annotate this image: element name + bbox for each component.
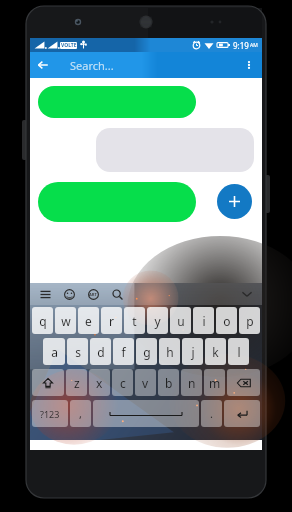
button[interactable]: a: [43, 338, 65, 365]
button[interactable]: Search: [108, 285, 126, 303]
button[interactable]: GIF: [84, 285, 102, 303]
staticText: g: [143, 344, 151, 360]
staticText: ?123: [40, 408, 60, 420]
button[interactable]: j: [182, 338, 203, 365]
staticText: h: [166, 344, 174, 360]
staticText: v: [142, 375, 149, 391]
staticText: k: [212, 344, 219, 360]
staticText: s: [75, 344, 81, 360]
button[interactable]: b: [158, 369, 179, 396]
staticText: y: [154, 313, 161, 329]
button[interactable]: z: [66, 369, 87, 396]
button[interactable]: u: [170, 307, 191, 334]
button[interactable]: h: [159, 338, 180, 365]
button[interactable]: More options: [236, 52, 262, 78]
staticText: u: [177, 313, 185, 329]
button[interactable]: t: [124, 307, 145, 334]
staticText: ,: [79, 406, 82, 421]
button[interactable]: ,: [70, 400, 91, 427]
button[interactable]: Hide keyboard: [238, 285, 256, 303]
button[interactable]: Enter: [224, 400, 260, 427]
button[interactable]: [38, 182, 196, 222]
button[interactable]: d: [90, 338, 111, 365]
staticText: .: [210, 406, 213, 421]
button[interactable]: n: [181, 369, 202, 396]
button[interactable]: x: [89, 369, 110, 396]
staticText: n: [188, 375, 196, 391]
button[interactable]: Add: [217, 184, 252, 219]
button[interactable]: .: [201, 400, 222, 427]
button[interactable]: ?123: [32, 400, 68, 427]
staticText: c: [120, 375, 126, 391]
staticText: 9:19: [233, 40, 249, 51]
button[interactable]: f: [113, 338, 134, 365]
button[interactable]: g: [136, 338, 157, 365]
staticText: f: [121, 344, 126, 360]
staticText: l: [237, 344, 241, 360]
staticText: w: [61, 313, 71, 329]
staticText: z: [74, 375, 80, 391]
staticText: AM: [250, 42, 258, 49]
staticText: o: [223, 313, 231, 329]
button[interactable]: Search...: [56, 52, 236, 78]
staticText: m: [209, 375, 221, 391]
button[interactable]: m: [204, 369, 225, 396]
button[interactable]: r: [101, 307, 122, 334]
staticText: q: [39, 313, 47, 329]
button[interactable]: k: [205, 338, 226, 365]
button[interactable]: y: [147, 307, 168, 334]
staticText: r: [109, 313, 114, 329]
button[interactable]: v: [135, 369, 156, 396]
staticText: j: [191, 344, 195, 360]
button[interactable]: [96, 128, 254, 172]
button[interactable]: Shift: [32, 369, 64, 396]
button[interactable]: e: [78, 307, 99, 334]
button[interactable]: Backspace: [227, 369, 260, 396]
staticText: t: [132, 313, 137, 329]
staticText: ART: [89, 292, 97, 297]
staticText: b: [165, 375, 173, 391]
staticText: a: [51, 344, 58, 360]
button[interactable]: w: [55, 307, 76, 334]
button[interactable]: Back: [30, 52, 56, 78]
button[interactable]: l: [228, 338, 249, 365]
button[interactable]: s: [67, 338, 88, 365]
staticText: Search...: [70, 58, 114, 73]
button[interactable]: q: [32, 307, 53, 334]
button[interactable]: Space: [93, 400, 199, 427]
button[interactable]: Menu: [36, 285, 54, 303]
staticText: d: [97, 344, 105, 360]
button[interactable]: [38, 86, 196, 118]
staticText: e: [85, 313, 92, 329]
staticText: x: [96, 375, 103, 391]
button[interactable]: p: [239, 307, 260, 334]
button[interactable]: i: [193, 307, 214, 334]
staticText: p: [246, 313, 254, 329]
staticText: VOLTE: [61, 42, 77, 49]
button[interactable]: c: [112, 369, 133, 396]
button[interactable]: o: [216, 307, 237, 334]
staticText: i: [202, 313, 206, 329]
button[interactable]: Emoji: [60, 285, 78, 303]
